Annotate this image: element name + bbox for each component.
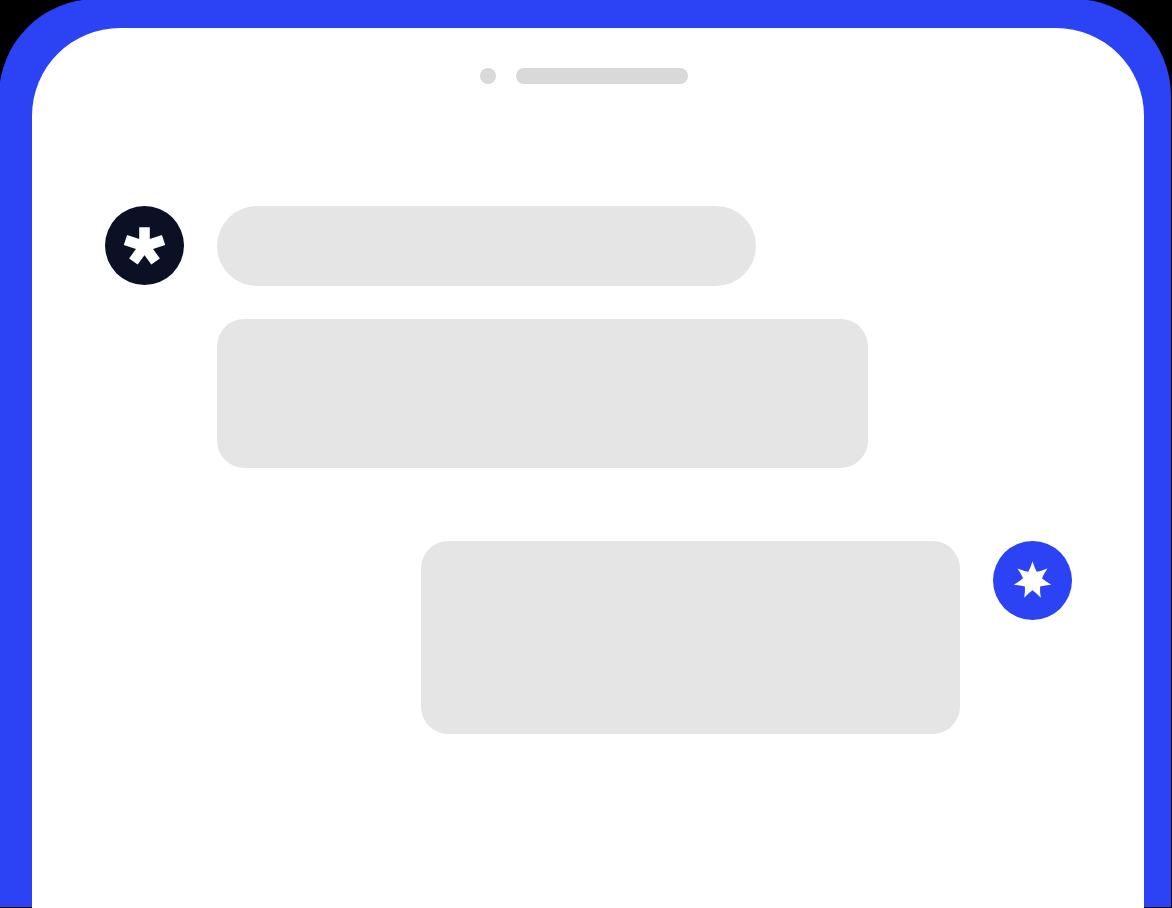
button[interactable]: Assistant profile <box>105 206 184 285</box>
button[interactable]: Compose with AI <box>993 541 1072 620</box>
